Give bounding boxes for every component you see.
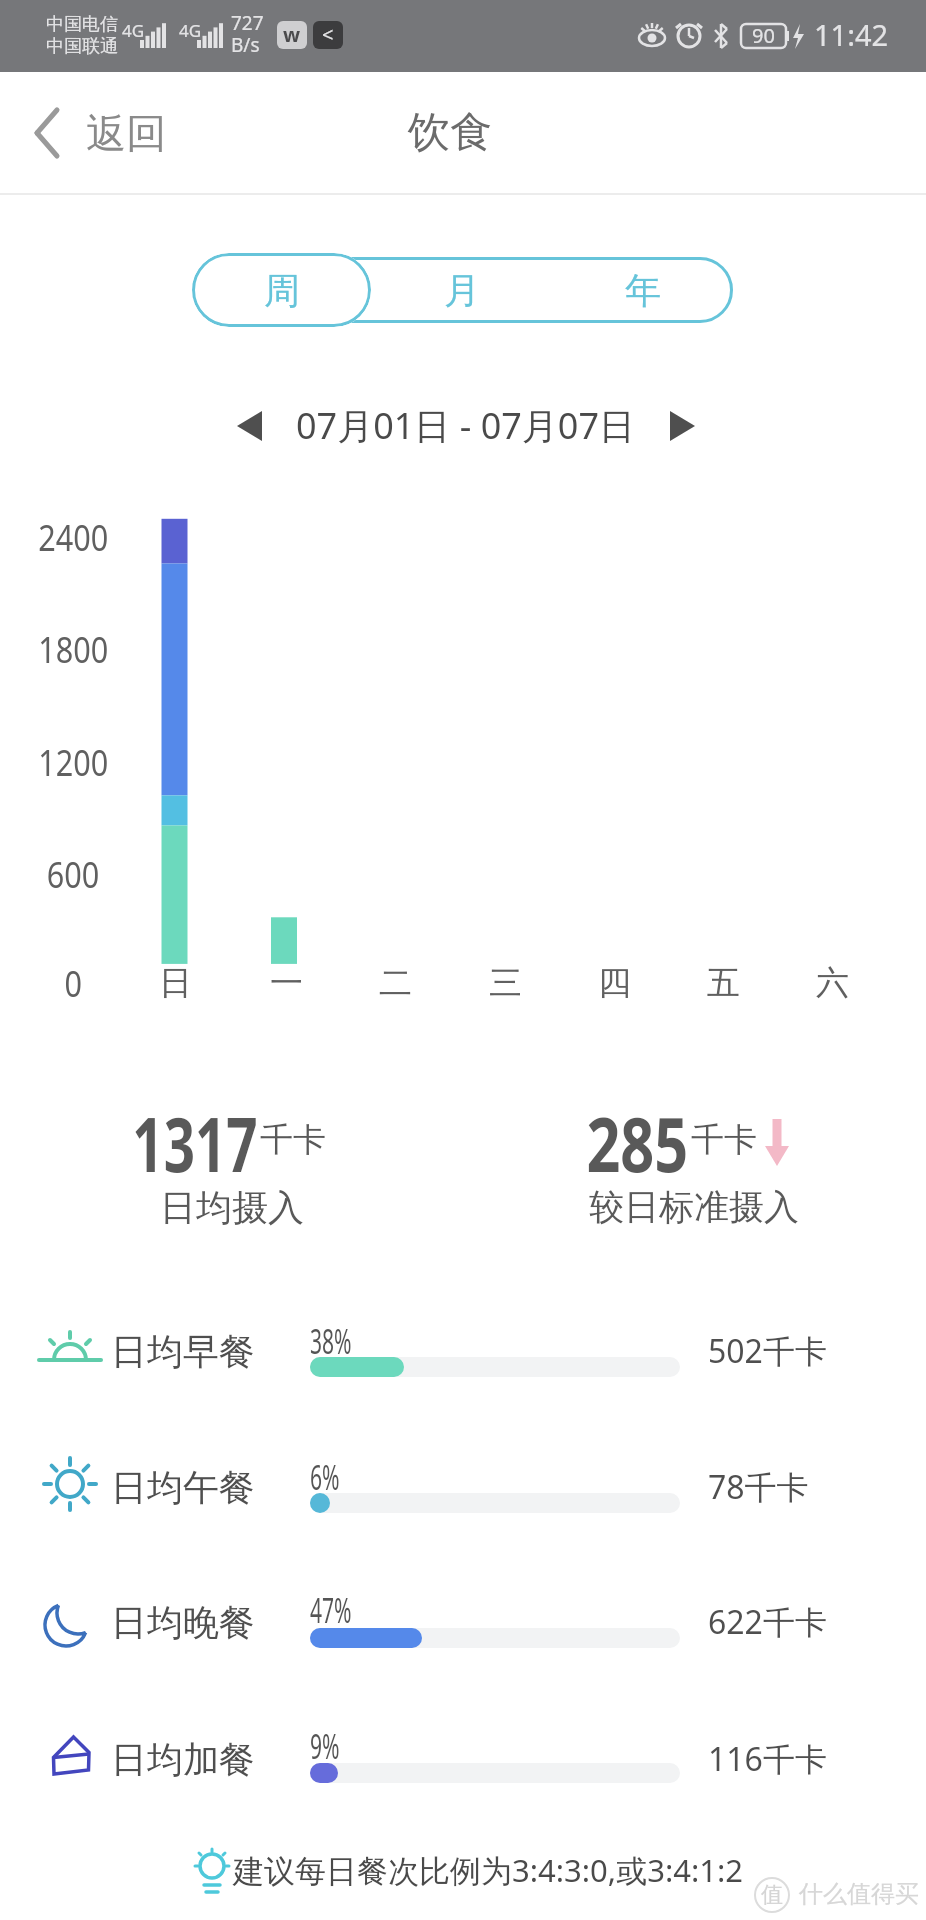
staticText: 727	[231, 10, 264, 36]
staticText: 什么值得买	[799, 1879, 919, 1909]
staticText: 中国联通	[46, 35, 118, 58]
button[interactable]	[650, 395, 710, 455]
staticText: 502千卡	[708, 1329, 827, 1373]
staticText: 600	[47, 850, 99, 899]
staticText: 日均早餐	[111, 1329, 255, 1374]
staticText: 日均晚餐	[111, 1600, 255, 1645]
staticText: 值	[761, 1881, 783, 1909]
staticText: 0	[65, 959, 82, 1008]
button[interactable]	[30, 1311, 890, 1391]
staticText: w	[283, 21, 301, 48]
staticText: B/s	[231, 32, 260, 58]
button[interactable]	[30, 1719, 890, 1799]
staticText: 1317	[132, 1091, 258, 1195]
staticText: 一	[270, 962, 303, 1004]
staticText: 47%	[310, 1587, 352, 1633]
staticText: 07月01日 - 07月07日	[296, 401, 636, 450]
staticText: 2400	[38, 513, 109, 562]
button[interactable]	[192, 253, 371, 327]
staticText: 五	[707, 962, 740, 1004]
staticText: 返回	[86, 108, 166, 158]
button[interactable]	[30, 1447, 890, 1527]
button[interactable]	[30, 1582, 890, 1662]
staticText: 1800	[38, 625, 109, 674]
staticText: 日均午餐	[111, 1465, 255, 1510]
staticText: 千卡	[691, 1119, 757, 1161]
staticText: 四	[598, 962, 631, 1004]
staticText: 285	[586, 1091, 689, 1195]
staticText: 116千卡	[708, 1737, 827, 1781]
staticText: 中国电信	[46, 13, 118, 36]
staticText: 千卡	[260, 1119, 326, 1161]
staticText: 建议每日餐次比例为3:4:3:0,或3:4:1:2	[233, 1849, 744, 1891]
staticText: 11:42	[814, 15, 889, 54]
staticText: 二	[379, 962, 412, 1004]
staticText: 4G	[122, 19, 145, 42]
staticText: 日均摄入	[160, 1185, 304, 1230]
staticText: 日	[159, 962, 192, 1004]
staticText: 三	[489, 962, 522, 1004]
staticText: 月	[444, 268, 480, 313]
staticText: 622千卡	[708, 1600, 827, 1644]
staticText: <	[322, 21, 334, 48]
staticText: 周	[264, 268, 300, 313]
staticText: 饮食	[408, 106, 492, 159]
button[interactable]	[371, 257, 551, 323]
button[interactable]	[20, 100, 170, 166]
staticText: 六	[816, 962, 849, 1004]
staticText: 较日标准摄入	[589, 1185, 799, 1229]
staticText: 90	[752, 22, 775, 49]
staticText: 日均加餐	[111, 1737, 255, 1782]
staticText: 78千卡	[708, 1465, 809, 1509]
button[interactable]	[551, 257, 733, 323]
staticText: 1200	[38, 738, 109, 787]
staticText: 38%	[310, 1318, 352, 1364]
staticText: 6%	[310, 1454, 340, 1500]
button[interactable]	[220, 395, 280, 455]
staticText: 4G	[179, 19, 202, 42]
staticText: 9%	[310, 1723, 340, 1769]
staticText: 年	[625, 268, 661, 313]
